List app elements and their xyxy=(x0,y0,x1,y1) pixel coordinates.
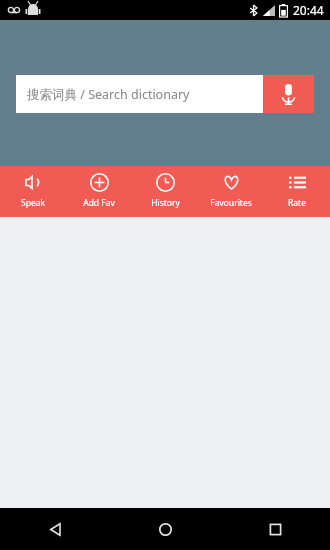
button[interactable]: Home xyxy=(110,508,220,550)
button[interactable]: Favourites xyxy=(198,166,264,217)
staticText: Speak xyxy=(21,197,45,209)
staticText: Favourites xyxy=(210,197,252,209)
button[interactable]: Recent apps xyxy=(220,508,330,550)
button[interactable]: History xyxy=(132,166,198,217)
button[interactable]: Speak xyxy=(0,166,66,217)
staticText: History xyxy=(151,197,180,209)
button[interactable]: Rate xyxy=(264,166,330,217)
staticText: Add Fav xyxy=(83,197,115,209)
staticText: 搜索词典 / Search dictionary xyxy=(27,86,190,103)
staticText: Rate xyxy=(288,197,306,209)
button[interactable]: Back xyxy=(0,508,110,550)
button[interactable]: Add Fav xyxy=(66,166,132,217)
staticText: 20:44 xyxy=(293,2,324,18)
button[interactable]: 搜索词典 / Search dictionary xyxy=(16,75,263,113)
button[interactable]: Voice search xyxy=(263,75,314,113)
